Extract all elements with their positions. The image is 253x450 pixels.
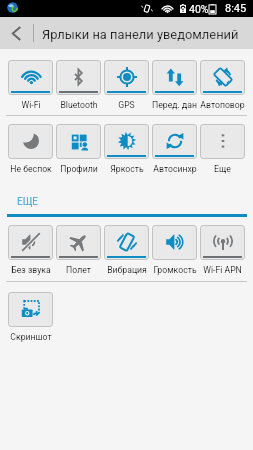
staticText: Bluetooth	[60, 100, 98, 110]
button[interactable]: Bluetooth	[56, 60, 101, 110]
staticText: Громкость	[153, 265, 197, 275]
button[interactable]: Громкость	[152, 225, 197, 275]
button[interactable]: Яркость	[104, 124, 149, 174]
staticText: Без звука	[11, 265, 51, 275]
staticText: Перед. дан	[152, 100, 197, 110]
staticText: Еще	[214, 164, 231, 174]
button[interactable]: Вибрация	[104, 225, 149, 275]
button[interactable]: Перед. дан	[152, 60, 197, 110]
staticText: Скриншот	[10, 332, 52, 342]
staticText: Профили	[60, 164, 98, 174]
staticText: Полет	[66, 265, 91, 275]
button[interactable]: Back	[0, 17, 32, 49]
staticText: Автоповор	[200, 100, 245, 110]
staticText: Яркость	[110, 164, 144, 174]
staticText: 40%	[189, 3, 209, 15]
button[interactable]: Полет	[56, 225, 101, 275]
button[interactable]: Не беспок	[8, 124, 53, 174]
button[interactable]: Wi-Fi APN	[200, 225, 245, 275]
staticText: Автосинхр	[153, 164, 197, 174]
button[interactable]: Еще	[200, 124, 245, 174]
button[interactable]: Wi-Fi	[8, 60, 53, 110]
staticText: ЕЩЕ	[17, 196, 39, 208]
button[interactable]: GPS	[104, 60, 149, 110]
staticText: Вибрация	[107, 265, 147, 275]
button[interactable]: Без звука	[8, 225, 53, 275]
staticText: GPS	[118, 100, 135, 110]
button[interactable]: Профили	[56, 124, 101, 174]
staticText: 8:45	[225, 2, 247, 15]
staticText: Ярлыки на панели уведомлений	[42, 27, 239, 42]
button[interactable]: Автосинхр	[152, 124, 197, 174]
button[interactable]: Скриншот	[8, 292, 53, 342]
staticText: Wi-Fi	[21, 100, 41, 110]
staticText: Wi-Fi APN	[203, 265, 242, 275]
button[interactable]: Автоповор	[200, 60, 245, 110]
staticText: Не беспок	[10, 164, 52, 174]
